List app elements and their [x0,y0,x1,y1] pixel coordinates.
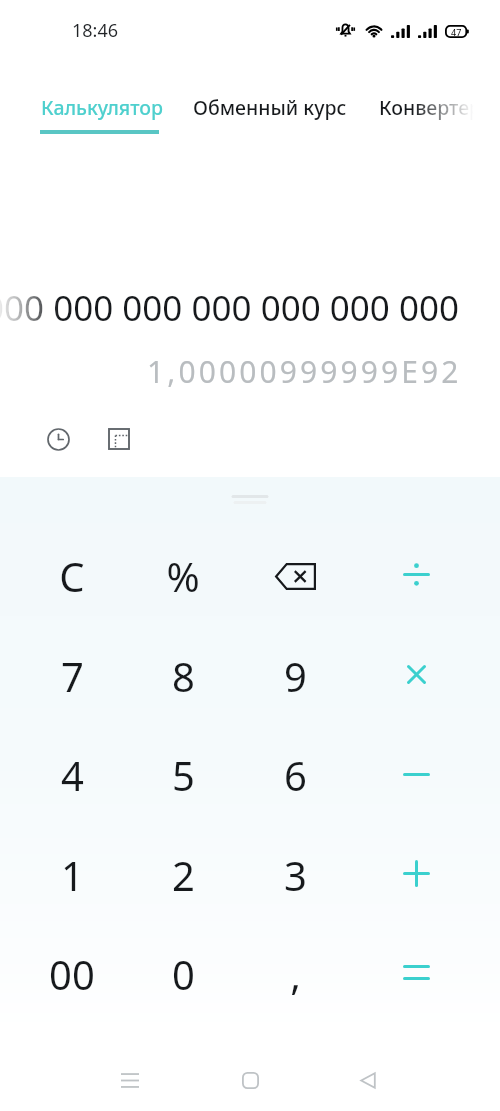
staticText: 3 [284,848,307,902]
button[interactable]: Калькулятор [21,86,184,129]
staticText: 9 [284,649,307,703]
staticText: Калькулятор [41,94,164,121]
other: Equals [403,964,430,981]
button[interactable]: C [24,532,120,620]
button[interactable]: Конвертер [359,86,500,129]
button[interactable]: 5 [135,731,231,819]
button[interactable]: Minus [368,729,464,817]
staticText: 7 [61,649,84,703]
button[interactable]: Backspace [247,532,343,620]
button[interactable]: 8 [135,632,231,720]
button[interactable]: % [135,532,231,620]
button[interactable]: Home [226,1056,274,1104]
button[interactable]: 1 [24,831,120,919]
other: Plus [403,860,430,887]
staticText: , [290,947,301,1001]
staticText: 5 [172,748,195,802]
staticText: 8 [172,649,195,703]
other: Divide [403,563,430,586]
staticText: 6 [284,748,307,802]
staticText: 0 [172,947,195,1001]
staticText: 1 [61,848,84,902]
staticText: 1,00000999999E92 [147,351,462,392]
staticText: 2 [172,848,195,902]
staticText: Конвертер [379,94,482,121]
other: Multiply [407,665,426,684]
staticText: % [166,549,200,603]
button[interactable]: 6 [247,731,343,819]
staticText: Обменный курс [193,94,347,121]
button[interactable]: 3 [247,831,343,919]
button[interactable]: , [247,930,343,1018]
staticText: C [59,549,85,603]
button[interactable]: Multiply [368,630,464,718]
button[interactable]: Memory [101,421,137,457]
button[interactable]: Plus [368,829,464,917]
button[interactable]: Back [344,1056,392,1104]
button[interactable]: 2 [135,831,231,919]
button[interactable]: 0 [135,930,231,1018]
button[interactable]: Divide [368,530,464,618]
staticText: 47 [451,26,462,38]
staticText: 18:46 [72,18,119,43]
button[interactable]: 00 [24,930,120,1018]
staticText: 00 [49,947,95,1001]
button[interactable]: 7 [24,632,120,720]
button[interactable]: Обменный курс [173,86,367,129]
other: Backspace [269,558,321,594]
button[interactable]: Equals [368,928,464,1016]
button[interactable]: 4 [24,731,120,819]
other: Minus [403,768,430,778]
button[interactable]: 9 [247,632,343,720]
staticText: 4 [61,748,84,802]
button[interactable]: History [40,421,76,457]
staticText: 000 000 000 000 000 000 000 [0,284,460,332]
button[interactable]: Recents [106,1056,154,1104]
